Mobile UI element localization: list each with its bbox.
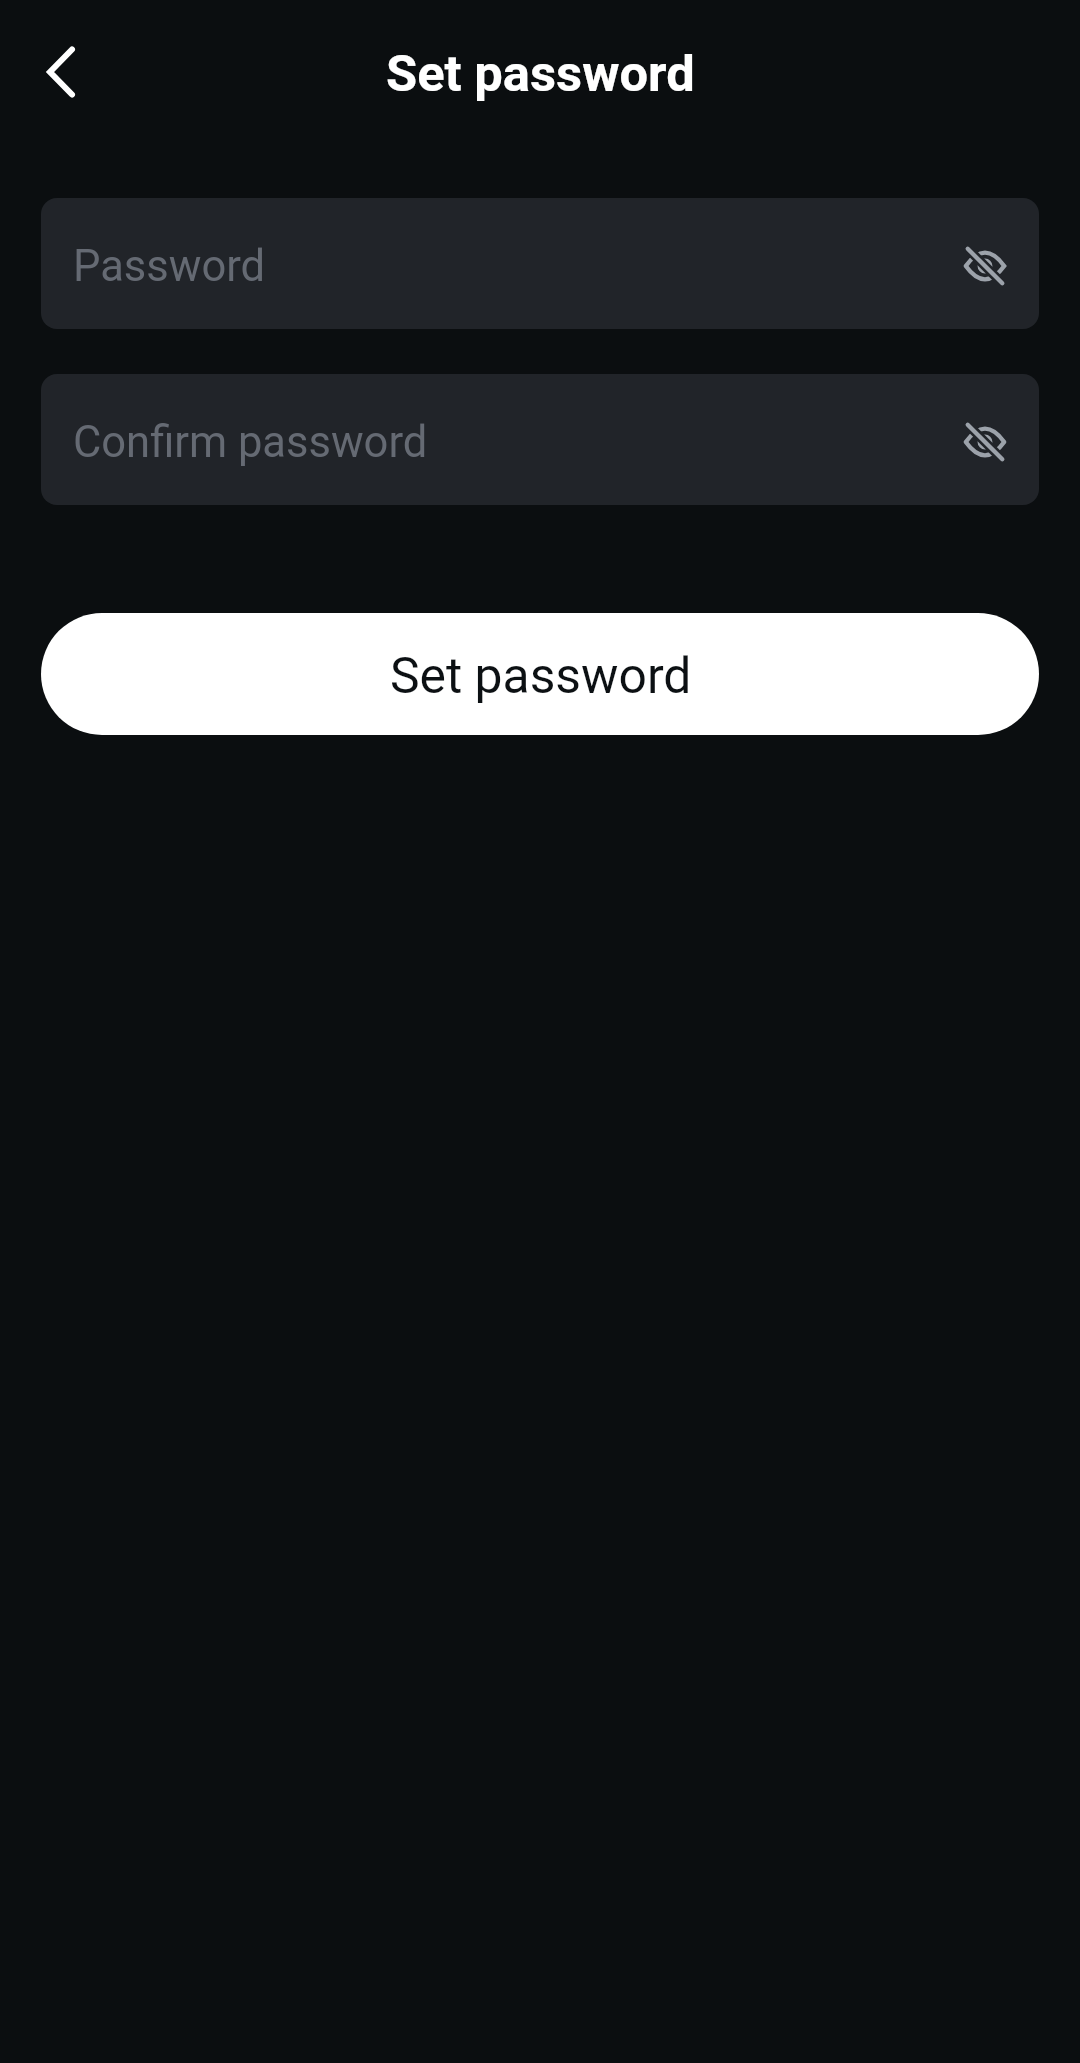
staticText: Set password xyxy=(386,44,695,103)
button[interactable]: Confirm password xyxy=(41,374,1039,505)
button[interactable]: Set password xyxy=(41,613,1039,735)
button[interactable]: Password xyxy=(41,198,1039,329)
button[interactable]: Show password xyxy=(951,232,1019,300)
button[interactable]: Back xyxy=(21,32,101,112)
staticText: Confirm password xyxy=(73,417,951,468)
staticText: Set password xyxy=(390,647,692,705)
button[interactable]: Show password xyxy=(951,408,1019,476)
staticText: Password xyxy=(73,241,951,292)
